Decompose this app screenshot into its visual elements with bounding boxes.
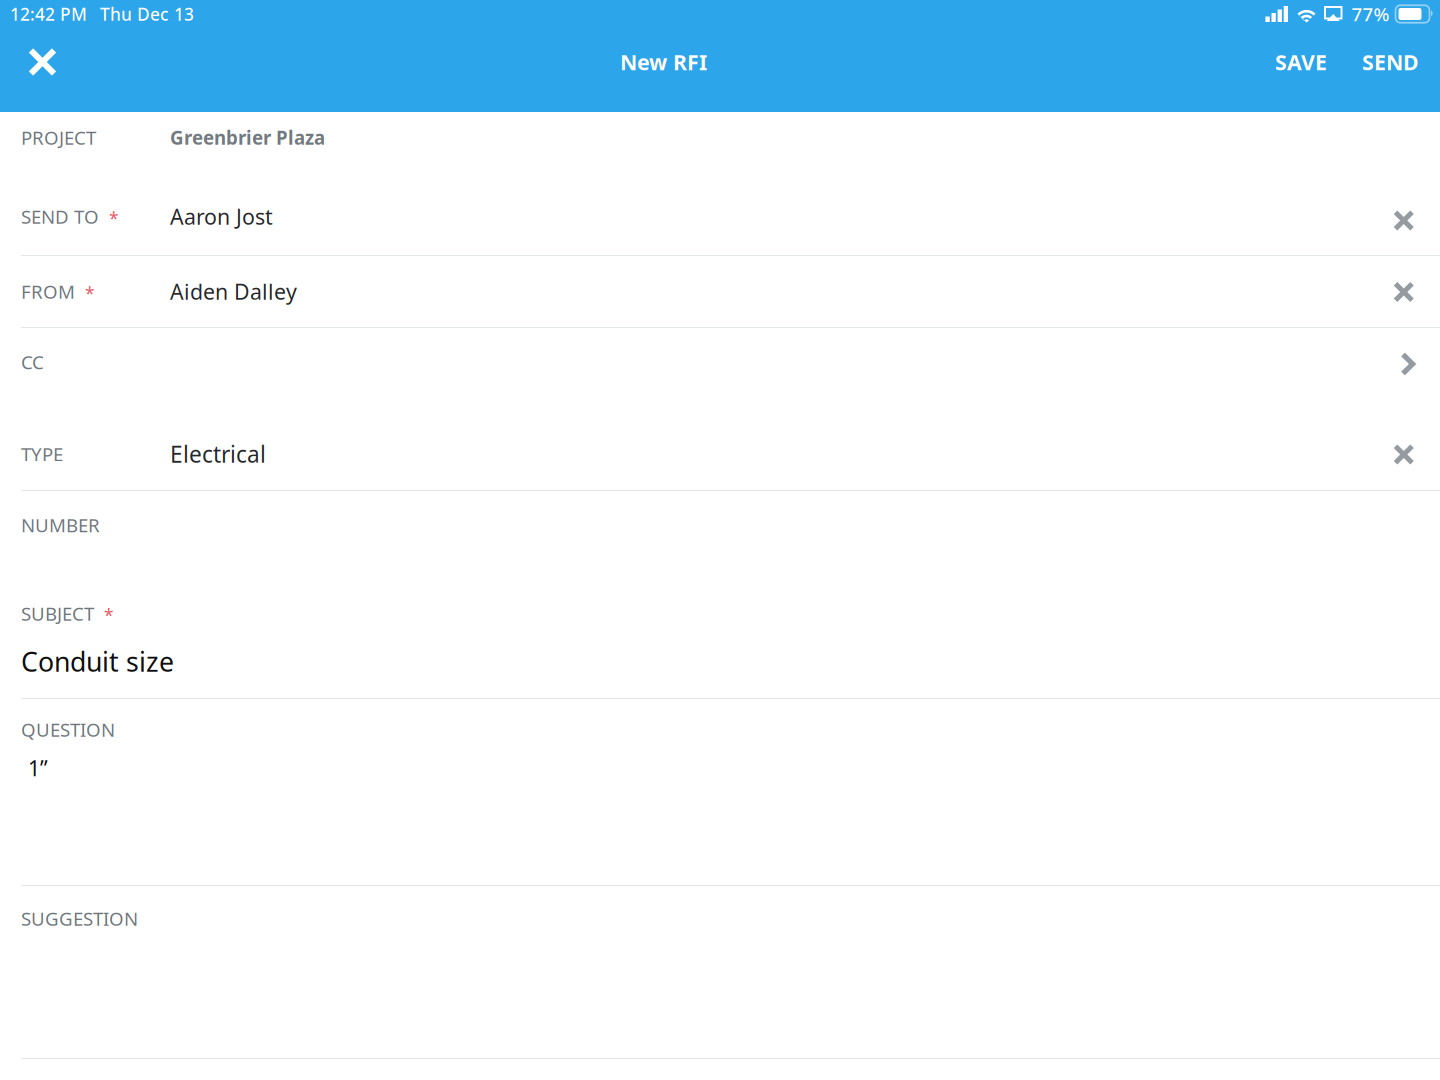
staticText: QUESTION [21,717,115,742]
button[interactable]: CC [0,328,1440,396]
staticText: PROJECT [21,125,96,150]
staticText: CC [21,350,44,374]
staticText: TYPE [21,442,63,466]
staticText: SEND TO [21,204,99,229]
staticText: 1” [28,754,48,782]
staticText: SAVE [1275,48,1327,76]
staticText: Thu Dec 13 [100,2,194,25]
staticText: Aaron Jost [170,202,273,231]
button[interactable]: FROM [0,256,1440,327]
staticText: 77% [1351,2,1389,26]
staticText: * [109,207,119,230]
button[interactable]: TYPE [0,418,1440,490]
staticText: SUGGESTION [21,906,138,931]
staticText: 12:42 PM [10,2,87,25]
staticText: SEND [1362,48,1419,76]
button[interactable]: Close [0,28,80,112]
staticText: NUMBER [21,513,100,537]
staticText: New RFI [620,48,707,76]
staticText: Conduit size [21,644,174,679]
button[interactable]: SEND [1348,28,1433,112]
button[interactable]: SEND TO [0,178,1440,255]
staticText: * [104,604,114,627]
staticText: Greenbrier Plaza [170,125,325,150]
staticText: SUBJECT [21,601,94,626]
staticText: * [85,282,95,305]
staticText: Electrical [170,439,266,469]
button[interactable]: SAVE [1261,28,1341,112]
staticText: Aiden Dalley [170,277,297,306]
staticText: FROM [21,279,75,304]
